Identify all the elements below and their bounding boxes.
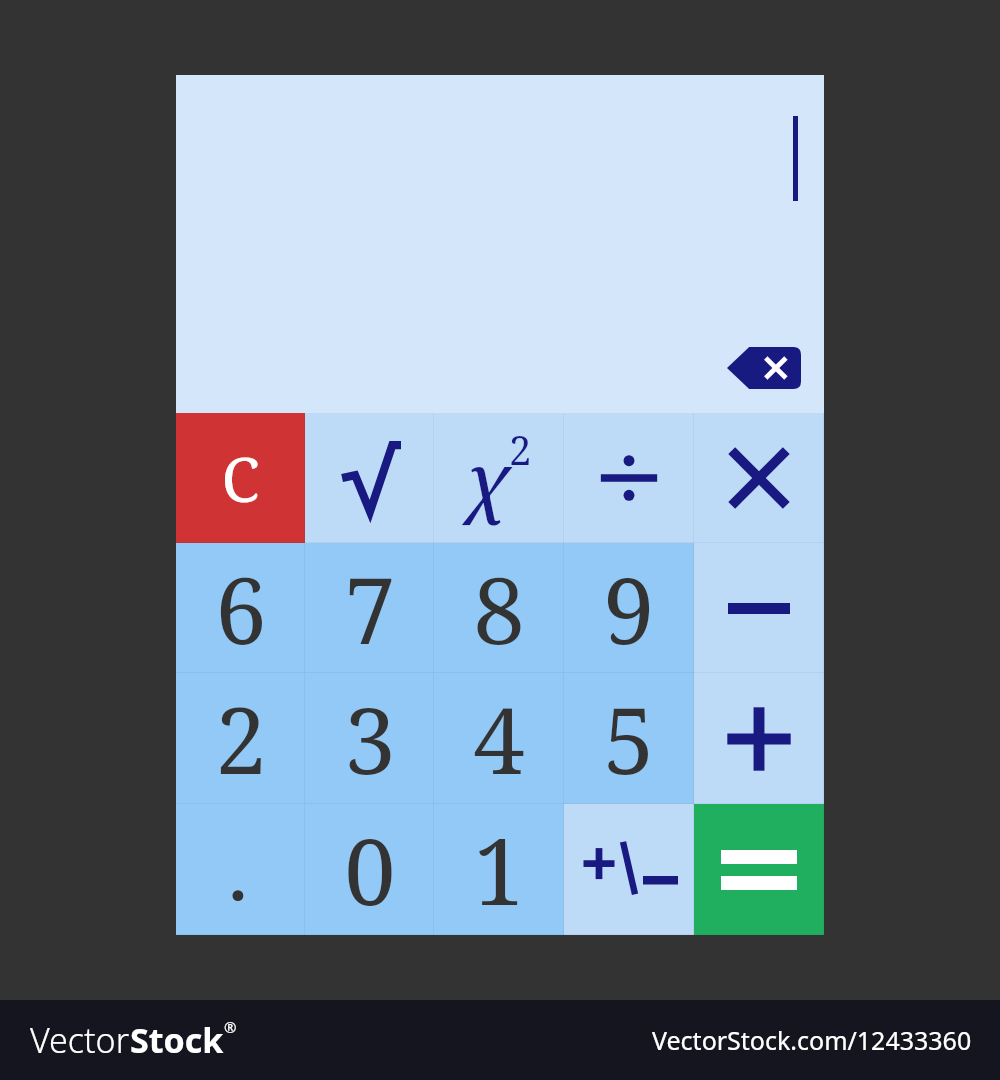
- staticText: Stock: [130, 1017, 224, 1063]
- button[interactable]: Equals: [694, 804, 824, 935]
- staticText: 5: [603, 676, 655, 801]
- staticText: C: [221, 436, 260, 520]
- button[interactable]: 4: [434, 673, 564, 804]
- button[interactable]: 3: [305, 673, 434, 804]
- button[interactable]: 6: [176, 543, 305, 673]
- staticText: 9: [603, 546, 655, 671]
- button[interactable]: 9: [564, 543, 694, 673]
- staticText: Vector: [30, 1017, 130, 1063]
- button[interactable]: 7: [305, 543, 434, 673]
- staticText: χ: [467, 428, 509, 529]
- staticText: 4: [473, 676, 525, 801]
- staticText: 2: [215, 676, 267, 801]
- staticText: 2: [509, 422, 532, 476]
- button[interactable]: Operator: [694, 673, 824, 804]
- button[interactable]: Backspace: [727, 347, 801, 389]
- staticText: 7: [344, 546, 396, 671]
- button[interactable]: 1: [434, 804, 564, 935]
- staticText: ®: [224, 1017, 237, 1037]
- staticText: 6: [215, 546, 267, 671]
- button[interactable]: Divide: [564, 413, 694, 543]
- button[interactable]: 8: [434, 543, 564, 673]
- button[interactable]: Square: [434, 413, 564, 543]
- button[interactable]: 2: [176, 673, 305, 804]
- button[interactable]: [176, 804, 305, 935]
- staticText: VectorStock.com/12433360: [652, 1023, 972, 1057]
- staticText: 3: [344, 676, 396, 801]
- button[interactable]: 0: [305, 804, 434, 935]
- staticText: 1: [473, 807, 525, 932]
- button[interactable]: Clear: [176, 413, 305, 543]
- button[interactable]: 5: [564, 673, 694, 804]
- staticText: 0: [344, 807, 396, 932]
- staticText: 8: [473, 546, 525, 671]
- button[interactable]: Square root: [305, 413, 434, 543]
- button[interactable]: Multiply: [694, 413, 824, 543]
- button[interactable]: Operator: [694, 543, 824, 673]
- button[interactable]: Plus minus: [564, 804, 694, 935]
